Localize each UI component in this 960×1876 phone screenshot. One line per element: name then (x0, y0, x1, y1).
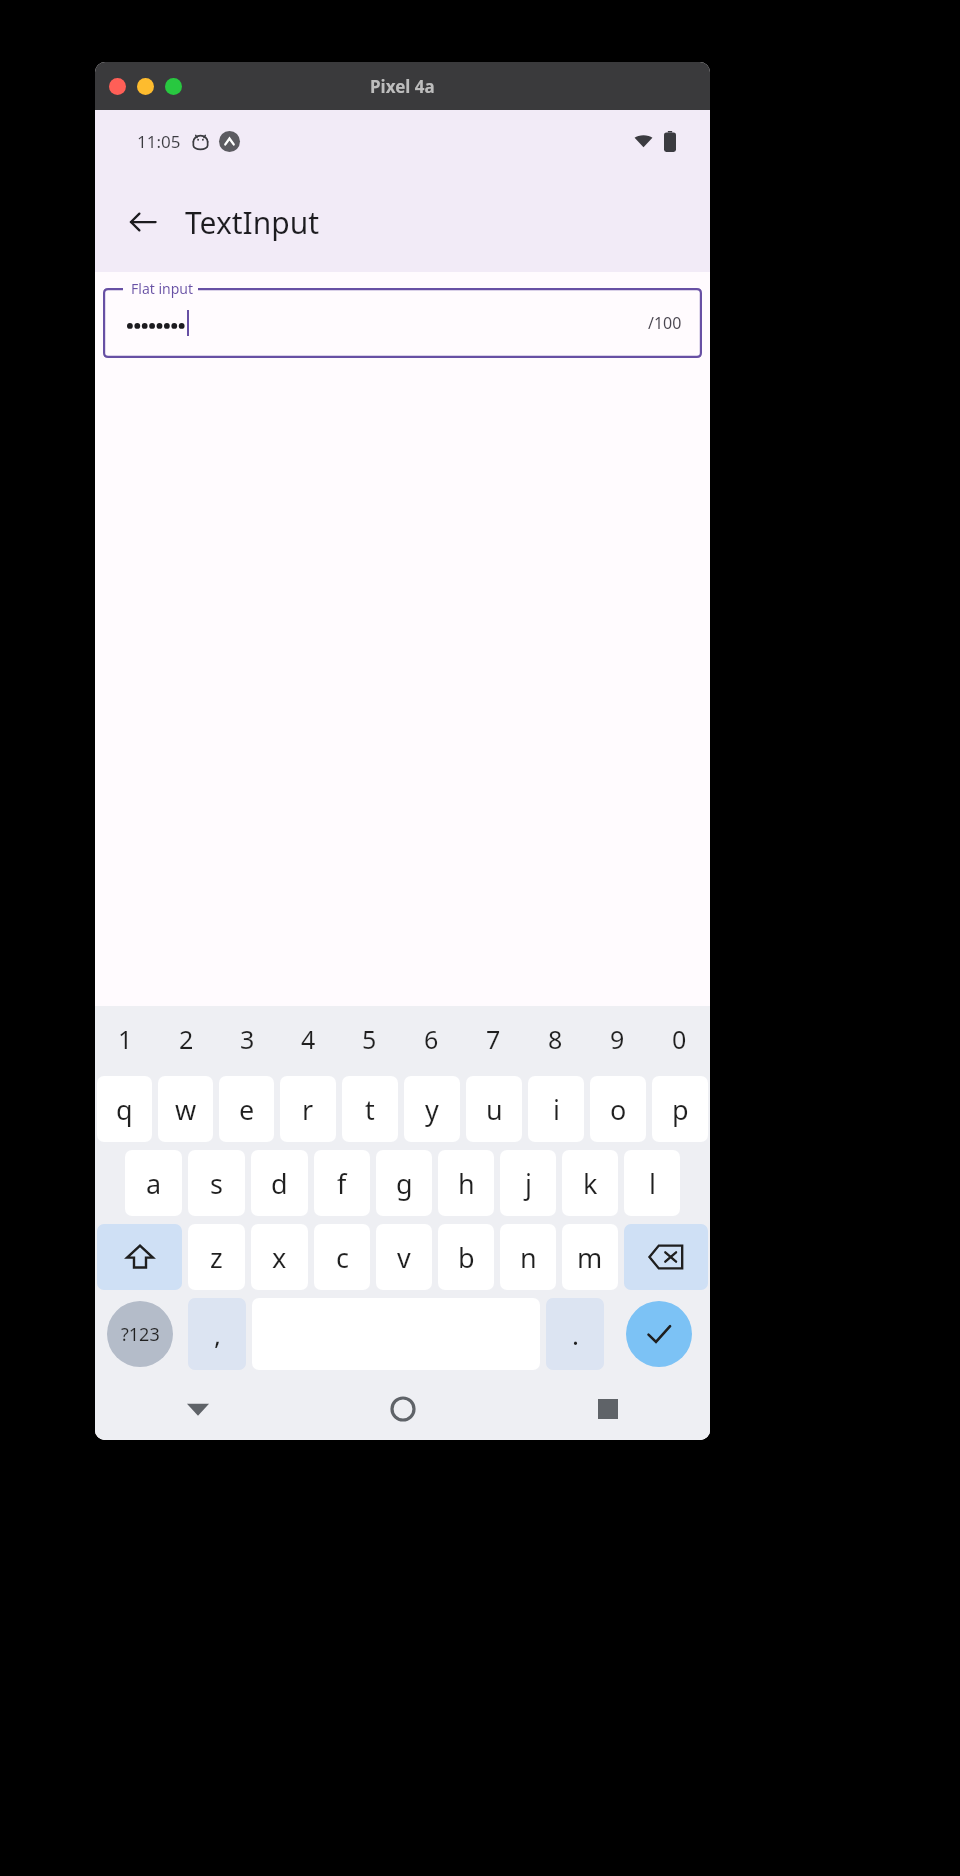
button[interactable]: u (466, 1076, 522, 1142)
staticText: e (239, 1091, 255, 1128)
button[interactable]: c (314, 1224, 370, 1290)
staticText: 1 (118, 1022, 133, 1056)
staticText: n (520, 1239, 537, 1276)
button[interactable]: Recent apps (505, 1378, 710, 1440)
button[interactable]: w (158, 1076, 213, 1142)
button[interactable]: Back (119, 198, 167, 246)
button[interactable]: e (219, 1076, 274, 1142)
staticText: h (458, 1165, 475, 1202)
button[interactable]: m (562, 1224, 618, 1290)
staticText: z (210, 1239, 223, 1276)
button[interactable]: j (500, 1150, 556, 1216)
staticText: b (458, 1239, 475, 1276)
staticText: r (302, 1091, 314, 1128)
staticText: o (610, 1091, 627, 1128)
button[interactable]: 9 (586, 1012, 648, 1066)
button[interactable] (127, 310, 189, 336)
staticText: Flat input (131, 279, 194, 298)
staticText: 5 (362, 1022, 377, 1056)
button[interactable]: 8 (524, 1012, 586, 1066)
button[interactable]: x (251, 1224, 308, 1290)
staticText: 6 (424, 1022, 439, 1056)
button[interactable]: 5 (339, 1012, 400, 1066)
button[interactable]: Home (300, 1378, 505, 1440)
button[interactable]: i (528, 1076, 584, 1142)
button[interactable]: 6 (400, 1012, 462, 1066)
staticText: m (577, 1239, 603, 1276)
staticText: t (365, 1091, 375, 1128)
button[interactable]: 7 (462, 1012, 524, 1066)
button[interactable]: y (404, 1076, 460, 1142)
staticText: 0 (672, 1022, 687, 1056)
button[interactable]: d (251, 1150, 308, 1216)
staticText: g (396, 1165, 413, 1202)
button[interactable]: p (652, 1076, 708, 1142)
button[interactable]: f (314, 1150, 370, 1216)
staticText: , (214, 1317, 221, 1352)
button[interactable]: g (376, 1150, 432, 1216)
button[interactable]: Backspace (624, 1224, 708, 1290)
staticText: 11:05 (137, 130, 181, 153)
button[interactable]: Close (109, 78, 126, 95)
button[interactable]: a (125, 1150, 182, 1216)
staticText: c (336, 1239, 349, 1276)
staticText: u (486, 1091, 503, 1128)
staticText: i (553, 1091, 560, 1128)
button[interactable]: Minimize (137, 78, 154, 95)
button[interactable]: Back (95, 1378, 300, 1440)
staticText: /100 (648, 312, 682, 334)
staticText: y (425, 1091, 439, 1128)
button[interactable]: . (546, 1298, 604, 1370)
staticText: x (272, 1239, 287, 1276)
staticText: s (210, 1165, 223, 1202)
button[interactable]: v (376, 1224, 432, 1290)
staticText: v (397, 1239, 411, 1276)
staticText: f (337, 1165, 347, 1202)
button[interactable]: r (280, 1076, 336, 1142)
button[interactable]: 0 (648, 1012, 710, 1066)
staticText: q (116, 1091, 133, 1128)
button[interactable]: 2 (156, 1012, 217, 1066)
button[interactable]: 3 (217, 1012, 278, 1066)
button[interactable]: Maximize (165, 78, 182, 95)
staticText: 4 (301, 1022, 316, 1056)
staticText: p (672, 1091, 689, 1128)
button[interactable]: 4 (278, 1012, 339, 1066)
button[interactable]: t (342, 1076, 398, 1142)
button[interactable]: z (188, 1224, 245, 1290)
staticText: ?123 (121, 1322, 160, 1347)
staticText: d (271, 1165, 288, 1202)
staticText: 8 (548, 1022, 563, 1056)
button[interactable]: l (624, 1150, 680, 1216)
staticText: 2 (179, 1022, 194, 1056)
staticText: k (583, 1165, 598, 1202)
staticText: j (525, 1165, 532, 1202)
button[interactable]: 1 (95, 1012, 156, 1066)
staticText: . (572, 1317, 579, 1352)
button[interactable]: b (438, 1224, 494, 1290)
button[interactable]: Shift (97, 1224, 182, 1290)
button[interactable]: , (188, 1298, 246, 1370)
staticText: w (175, 1091, 197, 1128)
staticText: 9 (610, 1022, 625, 1056)
staticText: Pixel 4a (370, 75, 435, 98)
staticText: 3 (240, 1022, 255, 1056)
button[interactable]: h (438, 1150, 494, 1216)
button[interactable]: ?123 (97, 1298, 182, 1370)
staticText: 7 (486, 1022, 501, 1056)
button[interactable]: k (562, 1150, 618, 1216)
staticText: a (146, 1165, 162, 1202)
staticText: l (649, 1165, 656, 1202)
button[interactable]: s (188, 1150, 245, 1216)
button[interactable]: o (590, 1076, 646, 1142)
button[interactable]: q (97, 1076, 152, 1142)
button[interactable]: Done (610, 1298, 708, 1370)
button[interactable]: n (500, 1224, 556, 1290)
staticText: TextInput (185, 202, 320, 243)
